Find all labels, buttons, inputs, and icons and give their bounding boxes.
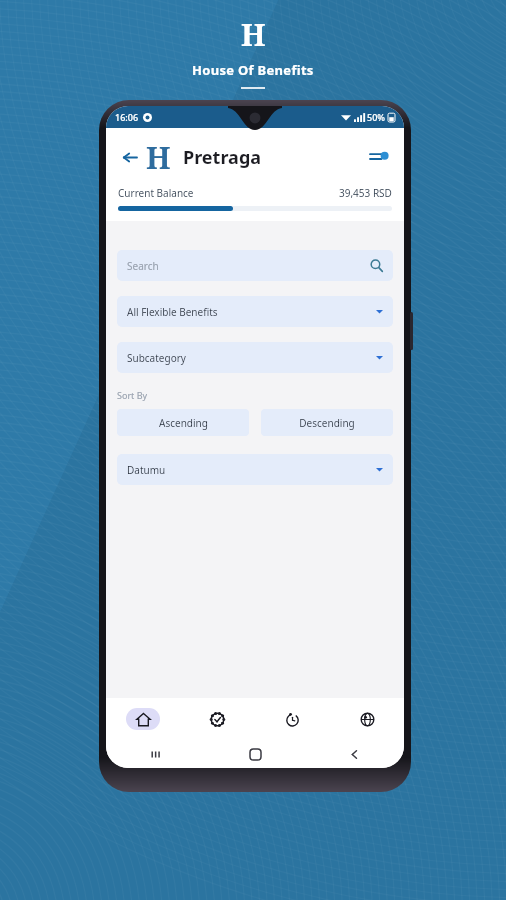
button[interactable]: Home [106, 698, 180, 740]
button[interactable]: More [329, 698, 404, 740]
staticText: Descending [299, 416, 355, 430]
staticText: Search [127, 259, 159, 273]
button[interactable]: Search [117, 250, 393, 281]
button[interactable]: Descending [261, 409, 393, 436]
staticText: Sort By [117, 389, 148, 401]
staticText: Datumu [127, 463, 166, 477]
button[interactable]: All Flexible Benefits [117, 296, 393, 327]
staticText: 50% [367, 111, 385, 123]
staticText: H [241, 14, 266, 55]
button[interactable]: Filter [364, 142, 394, 172]
staticText: All Flexible Benefits [127, 305, 218, 319]
button[interactable]: Recents [106, 740, 206, 768]
button[interactable]: Ascending [117, 409, 249, 436]
button[interactable]: Back [116, 144, 142, 170]
staticText: Subcategory [127, 351, 186, 365]
button[interactable]: History [254, 698, 329, 740]
staticText: H [146, 137, 171, 178]
button[interactable]: Home [206, 740, 305, 768]
button[interactable]: Benefits [180, 698, 254, 740]
button[interactable]: Subcategory [117, 342, 393, 373]
staticText: Pretraga [183, 145, 262, 170]
staticText: 39,453 RSD [339, 186, 392, 200]
button[interactable]: Back [305, 740, 404, 768]
button[interactable]: Datumu [117, 454, 393, 485]
staticText: 16:06 [115, 111, 139, 123]
staticText: Current Balance [118, 186, 194, 200]
staticText: Ascending [159, 416, 208, 430]
staticText: House Of Benefits [192, 61, 314, 79]
